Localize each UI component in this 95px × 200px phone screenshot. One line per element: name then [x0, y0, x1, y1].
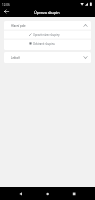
staticText: Hlavní pole	[11, 24, 26, 28]
staticText: Lektoři	[11, 56, 21, 60]
staticText: 12:06	[2, 3, 10, 7]
button[interactable]: Back	[2, 7, 10, 15]
button[interactable]: Odstranit skupinu	[4, 39, 91, 48]
button[interactable]: Upravit název skupiny	[4, 30, 91, 39]
button[interactable]: Recents	[68, 187, 81, 200]
button[interactable]: Lektoři	[4, 52, 91, 63]
staticText: Odstranit skupinu	[33, 42, 55, 46]
button[interactable]: Hlavní pole	[4, 21, 91, 30]
staticText: Upravit název skupiny	[33, 33, 60, 37]
button[interactable]: Home	[41, 187, 54, 200]
button[interactable]: Back	[14, 187, 27, 200]
staticText: Úprava skupin	[34, 10, 60, 15]
